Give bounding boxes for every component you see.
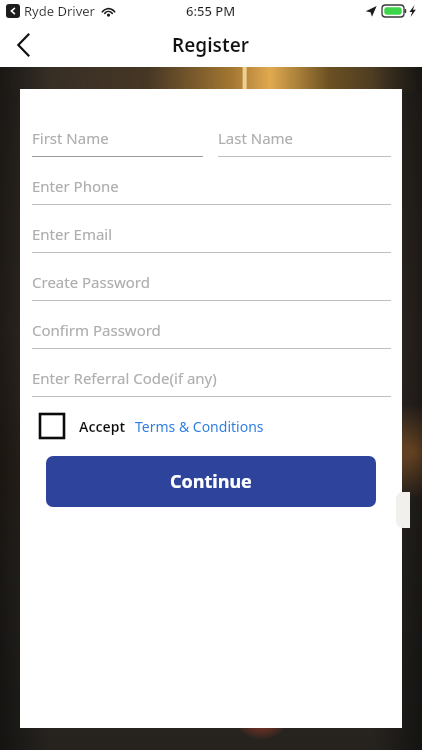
staticText: Enter Referral Code(if any): [32, 368, 217, 388]
staticText: Terms & Conditions: [135, 417, 264, 436]
button[interactable]: First Name: [32, 128, 203, 157]
staticText: Confirm Password: [32, 320, 161, 340]
button[interactable]: Confirm Password: [32, 320, 391, 349]
button[interactable]: Create Password: [32, 272, 391, 301]
staticText: Enter Phone: [32, 176, 119, 196]
button[interactable]: Continue: [46, 456, 376, 507]
button[interactable]: Enter Email: [32, 224, 391, 253]
staticText: Last Name: [218, 128, 294, 148]
staticText: Continue: [170, 469, 252, 494]
staticText: Ryde Driver: [24, 2, 95, 20]
button[interactable]: Back: [0, 22, 46, 67]
staticText: Accept: [79, 417, 126, 436]
button[interactable]: Enter Referral Code(if any): [32, 368, 391, 397]
button[interactable]: Accept: [40, 414, 264, 438]
staticText: 6:55 PM: [186, 2, 236, 20]
button[interactable]: Terms & Conditions: [135, 417, 264, 436]
button[interactable]: Enter Phone: [32, 176, 391, 205]
button[interactable]: Last Name: [218, 128, 391, 157]
button[interactable]: Back to Ryde Driver: [6, 4, 20, 18]
staticText: Enter Email: [32, 224, 113, 244]
staticText: Register: [172, 32, 250, 58]
staticText: Create Password: [32, 272, 150, 292]
staticText: First Name: [32, 128, 109, 148]
